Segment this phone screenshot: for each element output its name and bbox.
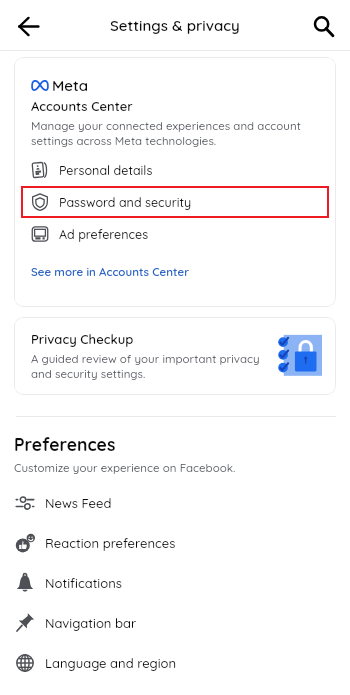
staticText: Password and security xyxy=(59,194,192,210)
staticText: Settings & privacy xyxy=(110,16,240,35)
staticText: Navigation bar xyxy=(45,615,137,631)
button[interactable]: News Feed xyxy=(0,483,350,523)
staticText: Personal details xyxy=(59,162,153,178)
staticText: Notifications xyxy=(45,575,122,591)
button[interactable]: Navigation bar xyxy=(0,603,350,643)
staticText: Manage your connected experiences and ac… xyxy=(31,118,329,148)
staticText: Reaction preferences xyxy=(45,535,176,551)
staticText: Preferences xyxy=(14,433,116,455)
staticText: A guided review of your important privac… xyxy=(31,351,272,381)
button[interactable]: See more in Accounts Center xyxy=(31,264,189,278)
staticText: Accounts Center xyxy=(31,98,133,114)
button[interactable]: Personal details xyxy=(21,154,329,186)
staticText: Language and region xyxy=(45,655,177,671)
staticText: Privacy Checkup xyxy=(31,331,134,347)
button[interactable]: Back xyxy=(6,4,50,48)
staticText: News Feed xyxy=(45,495,112,511)
staticText: Meta xyxy=(52,76,89,95)
button[interactable]: Search xyxy=(301,4,345,48)
staticText: Customize your experience on Facebook. xyxy=(14,460,236,474)
button[interactable]: Ad preferences xyxy=(21,218,329,250)
button[interactable]: Language and region xyxy=(0,643,350,683)
button[interactable]: Password and security xyxy=(21,186,329,218)
button[interactable]: Privacy Checkup xyxy=(14,317,336,395)
button[interactable]: Reaction preferences xyxy=(0,523,350,563)
staticText: Ad preferences xyxy=(59,226,149,242)
button[interactable]: Notifications xyxy=(0,563,350,603)
